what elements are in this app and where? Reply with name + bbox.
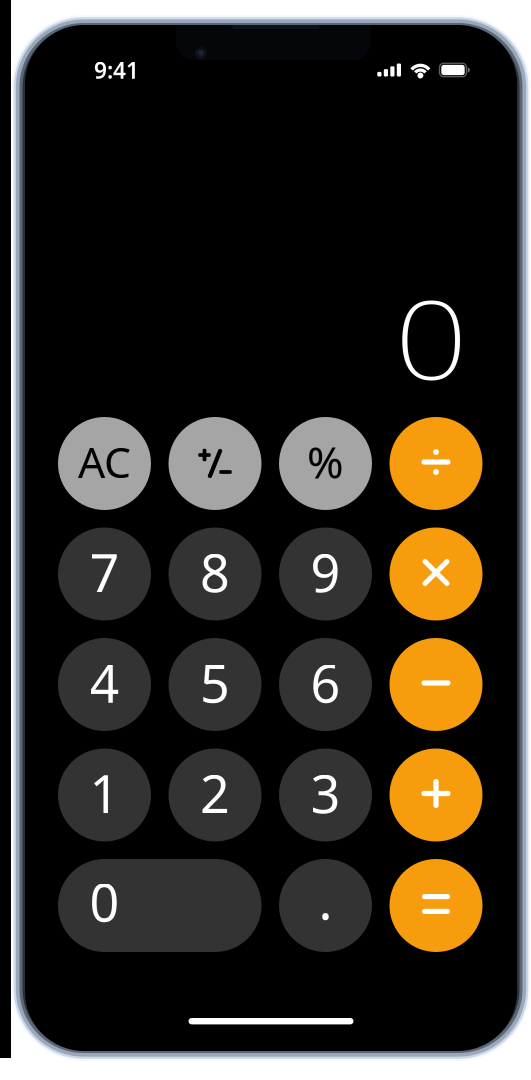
button[interactable]: 9: [279, 527, 372, 620]
staticText: .: [318, 865, 332, 934]
button[interactable]: Minus: [389, 638, 482, 731]
button[interactable]: %: [279, 417, 372, 510]
staticText: AC: [78, 433, 131, 490]
button[interactable]: 1: [58, 748, 151, 841]
button[interactable]: 3: [279, 748, 372, 841]
button[interactable]: Multiply: [389, 527, 482, 620]
staticText: 9:41: [94, 55, 139, 85]
button[interactable]: Plus minus: [168, 417, 261, 510]
button[interactable]: 2: [168, 748, 261, 841]
button[interactable]: 7: [58, 527, 151, 620]
button[interactable]: Equals: [389, 859, 482, 952]
button[interactable]: AC: [58, 417, 151, 510]
button[interactable]: Plus: [389, 748, 482, 841]
button[interactable]: 4: [58, 638, 151, 731]
staticText: 5: [200, 648, 230, 717]
staticText: %: [307, 432, 344, 491]
button[interactable]: 8: [168, 527, 261, 620]
button[interactable]: 6: [279, 638, 372, 731]
staticText: 2: [200, 758, 230, 828]
staticText: 9: [310, 537, 340, 607]
staticText: 0: [400, 264, 462, 410]
staticText: 3: [310, 758, 340, 828]
button[interactable]: Divide: [389, 417, 482, 510]
staticText: 1: [89, 758, 119, 828]
staticText: 8: [200, 537, 230, 607]
button[interactable]: 0: [58, 859, 261, 952]
button[interactable]: 5: [168, 638, 261, 731]
staticText: 0: [89, 867, 119, 936]
staticText: 4: [89, 648, 119, 717]
button[interactable]: .: [279, 859, 372, 952]
staticText: 7: [89, 537, 119, 607]
staticText: 6: [310, 648, 340, 717]
